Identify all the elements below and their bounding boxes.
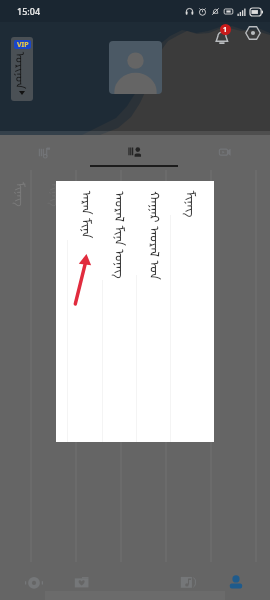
staticText: 15:04 (17, 5, 41, 17)
staticText: 1 (223, 25, 228, 35)
staticText: ᠬᠠᠭᠠᠷ ᠠᠥᠷᠠᠯ ᠤᠨ (146, 191, 169, 280)
button[interactable]: VIP membership (11, 37, 33, 101)
button[interactable]: Profile photo (109, 41, 162, 94)
staticText: ᠠᠷᠠᠨ ᠮᠢᠨᠡ (77, 190, 100, 238)
button[interactable]: ᠠᠥᠷᠠᠯ ᠮᠢᠨᠡ ᠤᠨᠡᠭ (102, 181, 137, 442)
button[interactable]: ᠮᠢᠨᠡᠭ (170, 181, 205, 442)
button[interactable]: Me (220, 562, 252, 600)
button[interactable]: Notifications (212, 25, 234, 47)
button[interactable]: ᠬᠠᠭᠠᠷ ᠠᠥᠷᠠᠯ ᠤᠨ (136, 181, 171, 442)
button[interactable]: ᠠᠷᠠᠨ ᠮᠢᠨᠡ (67, 181, 102, 442)
staticText: ᠣᠷᠢᠨᠤᠨ (12, 52, 33, 89)
staticText: ᠮᠢᠨᠡᠭ (11, 181, 32, 207)
button[interactable]: Favourites (66, 562, 98, 600)
staticText: ᠮᠢᠨᠡᠭ (46, 181, 67, 207)
button[interactable]: Discover (18, 562, 50, 600)
button[interactable]: Music (172, 562, 204, 600)
staticText: ᠠᠥᠷᠠᠯ ᠮᠢᠨᠡ ᠤᠨᠡᠭ (111, 191, 134, 280)
staticText: VIP (17, 40, 29, 49)
staticText: ᠮᠢᠨᠡᠭ (181, 190, 204, 218)
button[interactable]: Friends (90, 135, 180, 170)
button[interactable]: Settings (244, 24, 262, 42)
